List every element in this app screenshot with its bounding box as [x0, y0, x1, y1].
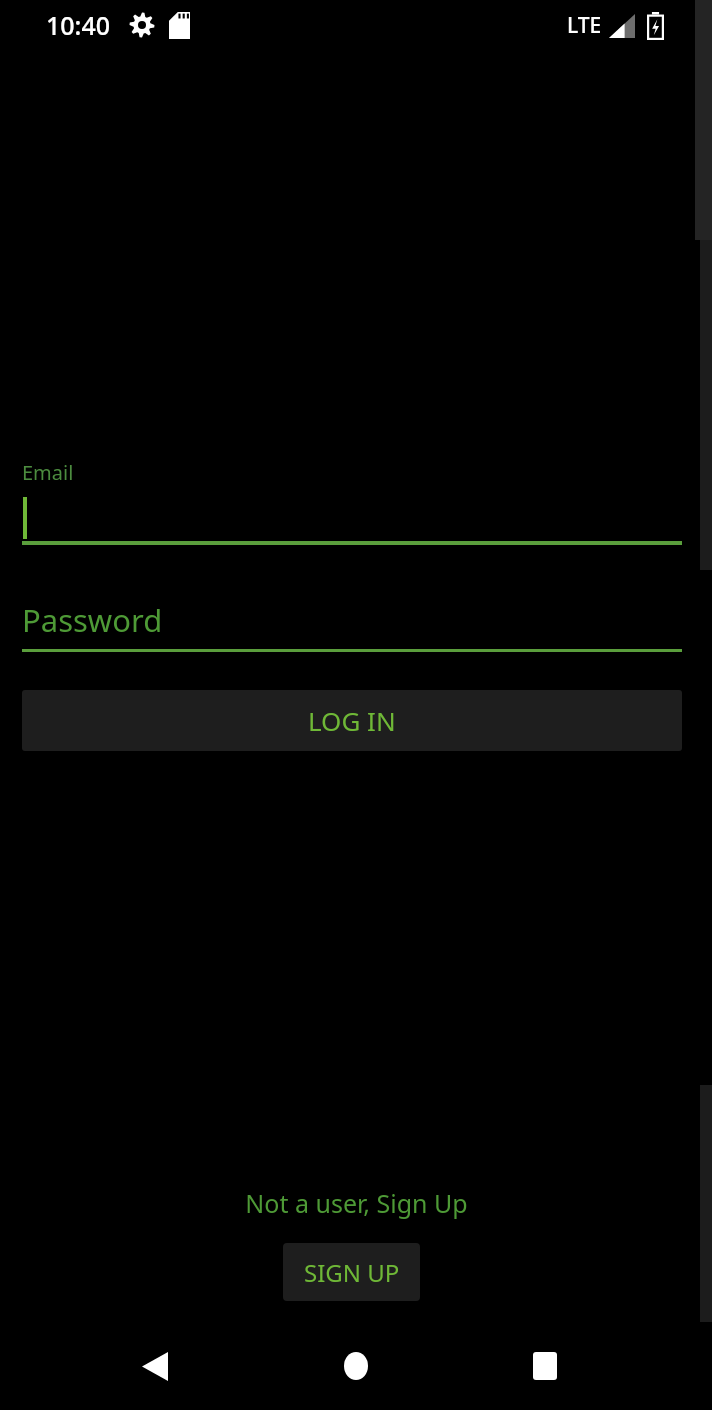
- button[interactable]: SIGN UP: [283, 1243, 420, 1301]
- button[interactable]: Not a user, Sign Up: [0, 1186, 712, 1220]
- button[interactable]: Back: [108, 1322, 202, 1410]
- button[interactable]: Password: [22, 598, 682, 652]
- button[interactable]: LOG IN: [22, 690, 682, 751]
- staticText: SIGN UP: [304, 1256, 400, 1289]
- staticText: Email: [22, 459, 74, 486]
- button[interactable]: Recent apps: [498, 1322, 592, 1410]
- staticText: LTE: [567, 11, 602, 40]
- button[interactable]: Home: [309, 1322, 403, 1410]
- staticText: Not a user, Sign Up: [245, 1186, 468, 1220]
- staticText: Password: [22, 599, 163, 641]
- staticText: 10:40: [46, 8, 111, 42]
- button[interactable]: [22, 490, 682, 545]
- staticText: LOG IN: [308, 703, 396, 738]
